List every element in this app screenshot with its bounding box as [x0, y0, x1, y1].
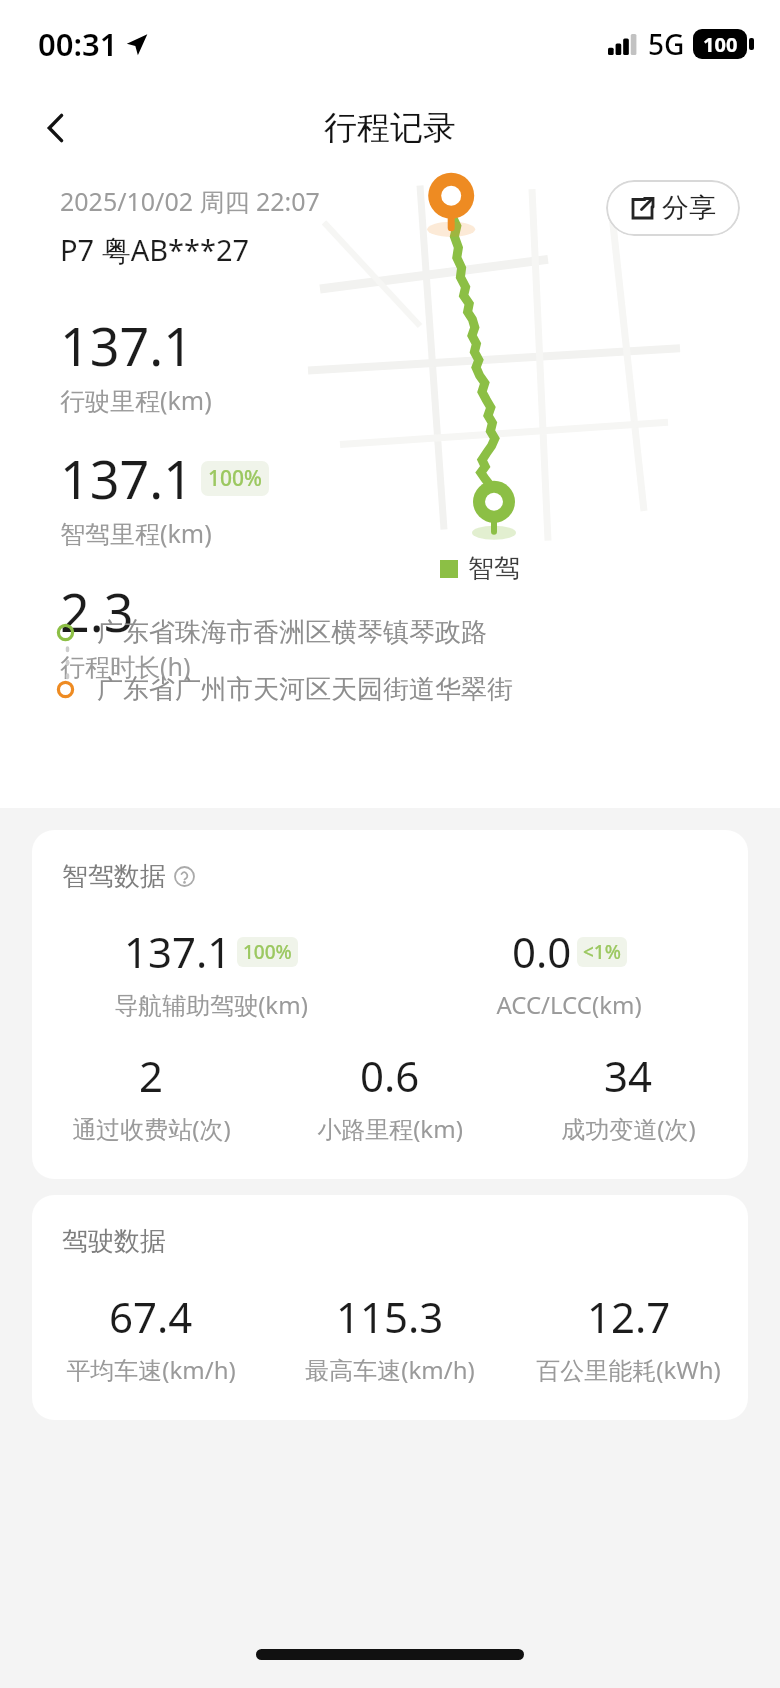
- staticText: 行程时长(h): [60, 649, 191, 683]
- staticText: 137.1: [60, 310, 193, 381]
- staticText: 2: [139, 1047, 164, 1104]
- staticText: 智驾数据: [62, 860, 166, 893]
- staticText: 智驾里程(km): [60, 516, 212, 550]
- button[interactable]: 分享: [606, 180, 740, 236]
- staticText: 小路里程(km): [317, 1112, 463, 1145]
- staticText: 广东省广州市天河区天园街道华翠街: [97, 673, 513, 706]
- button[interactable]: Back: [26, 98, 86, 158]
- staticText: 100: [703, 31, 738, 58]
- staticText: 34: [604, 1047, 653, 1104]
- staticText: 12.7: [587, 1288, 671, 1345]
- staticText: 导航辅助驾驶(km): [114, 988, 308, 1021]
- staticText: 行驶里程(km): [60, 383, 212, 417]
- staticText: 驾驶数据: [62, 1225, 166, 1258]
- staticText: 行程记录: [324, 107, 456, 149]
- staticText: 5G: [648, 25, 685, 63]
- staticText: 分享: [662, 191, 716, 225]
- staticText: 137.1: [60, 443, 193, 514]
- staticText: P7 粤AB***27: [60, 230, 250, 270]
- staticText: 平均车速(km/h): [66, 1353, 236, 1386]
- staticText: 100%: [243, 939, 292, 965]
- staticText: 智驾: [468, 552, 520, 585]
- staticText: 0.6: [360, 1047, 420, 1104]
- staticText: 2025/10/02 周四 22:07: [60, 184, 320, 218]
- staticText: 115.3: [336, 1288, 444, 1345]
- staticText: 成功变道(次): [561, 1112, 696, 1145]
- staticText: 100%: [208, 464, 262, 493]
- staticText: 2.3: [60, 576, 134, 647]
- staticText: 00:31: [38, 23, 118, 65]
- staticText: <1%: [583, 939, 621, 965]
- staticText: 通过收费站(次): [72, 1112, 231, 1145]
- staticText: 137.1: [124, 923, 232, 980]
- staticText: 百公里能耗(kWh): [536, 1353, 721, 1386]
- staticText: ACC/LCC(km): [496, 988, 642, 1021]
- staticText: 0.0: [512, 923, 572, 980]
- staticText: 最高车速(km/h): [305, 1353, 475, 1386]
- staticText: 广东省珠海市香洲区横琴镇琴政路: [97, 616, 487, 649]
- staticText: 67.4: [109, 1288, 193, 1345]
